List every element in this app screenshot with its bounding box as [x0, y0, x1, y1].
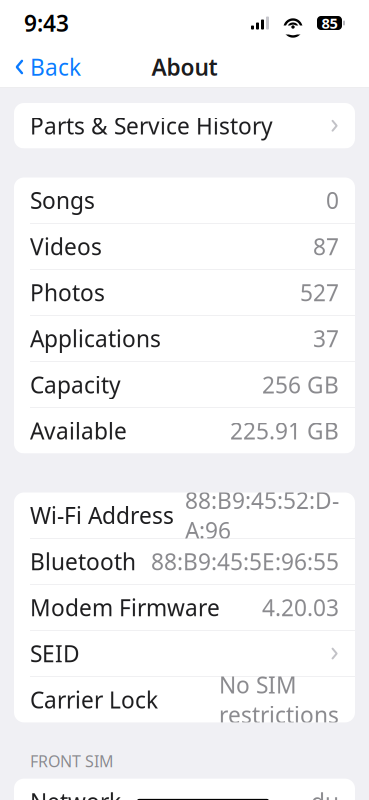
staticText: Modem Firmware	[30, 592, 220, 622]
staticText: 4.20.03	[262, 592, 339, 622]
staticText: 88:B9:45:5E:96:55	[151, 546, 339, 576]
staticText: Network	[30, 786, 121, 800]
staticText: Photos	[30, 277, 105, 307]
staticText: Bluetooth	[30, 546, 136, 576]
staticText: Capacity	[30, 370, 121, 400]
staticText: SEID	[30, 638, 80, 669]
button[interactable]: Back	[2, 44, 93, 90]
staticText: Videos	[30, 231, 102, 261]
staticText: Available	[30, 416, 127, 446]
staticText: 9:43	[24, 8, 69, 38]
button[interactable]: SEID	[14, 631, 355, 676]
staticText: FRONT SIM	[30, 750, 114, 772]
staticText: 0	[326, 185, 339, 215]
staticText: Carrier Lock	[30, 685, 158, 715]
staticText: 256 GB	[262, 370, 339, 400]
staticText: 85	[321, 13, 337, 33]
staticText: 527	[300, 277, 339, 307]
staticText: 225.91 GB	[230, 416, 339, 446]
button[interactable]: Parts & Service History	[14, 103, 355, 148]
staticText: 87	[313, 231, 339, 261]
staticText: About	[151, 52, 217, 82]
staticText: Parts & Service History	[30, 111, 273, 141]
staticText: Back	[30, 52, 81, 82]
staticText: No SIM restrictions	[219, 669, 339, 730]
staticText: du	[311, 786, 339, 800]
staticText: 37	[313, 323, 339, 354]
staticText: Applications	[30, 323, 161, 354]
staticText: Songs	[30, 185, 95, 215]
staticText: Wi-Fi Address	[30, 500, 174, 530]
staticText: 88:B9:45:52:DA:96	[185, 485, 339, 545]
